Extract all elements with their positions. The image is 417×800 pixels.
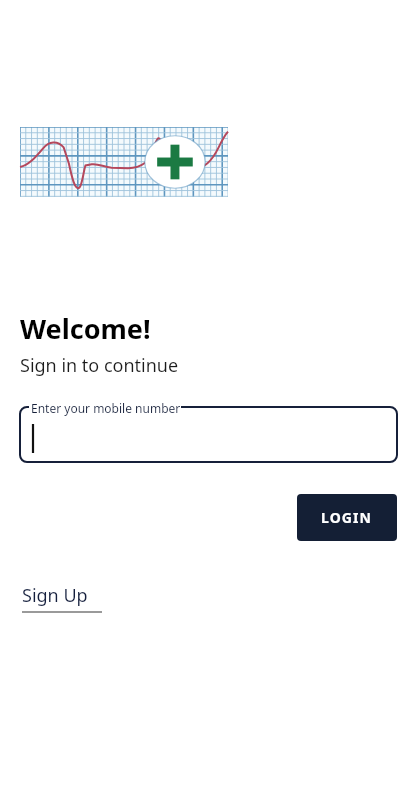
button[interactable]: Enter your mobile number bbox=[20, 400, 397, 470]
staticText: Sign Up bbox=[22, 583, 88, 608]
button[interactable]: Sign Up bbox=[20, 580, 104, 616]
staticText: Sign in to continue bbox=[20, 353, 179, 378]
other: App logo bbox=[20, 127, 228, 197]
staticText: Enter your mobile number bbox=[31, 400, 181, 416]
staticText: LOGIN bbox=[321, 508, 373, 527]
button[interactable]: LOGIN bbox=[297, 494, 397, 541]
staticText: Welcome! bbox=[20, 310, 151, 347]
